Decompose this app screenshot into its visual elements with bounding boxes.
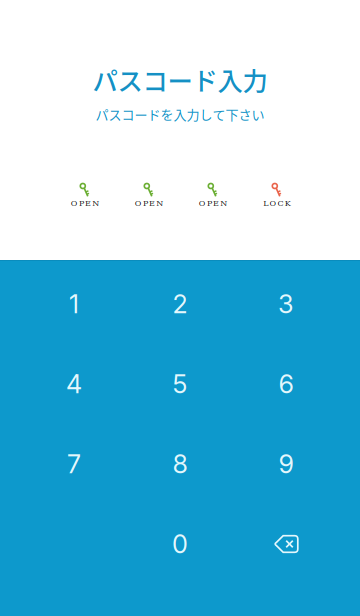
staticText: 5 [172, 369, 187, 399]
button[interactable]: 7 [21, 424, 127, 504]
staticText: 4 [66, 369, 82, 399]
staticText: 3 [278, 289, 294, 319]
staticText: P [79, 199, 84, 208]
staticText: パスコード入力 [92, 61, 267, 98]
staticText: 6 [278, 369, 293, 399]
button[interactable]: 6 [233, 344, 339, 424]
staticText: C [278, 199, 284, 208]
staticText: 0 [172, 529, 188, 559]
button[interactable]: 1 [21, 264, 127, 344]
staticText: N [156, 199, 163, 208]
staticText: E [149, 199, 155, 208]
staticText: O [199, 199, 206, 208]
staticText: 1 [69, 289, 79, 319]
staticText: L [263, 199, 268, 208]
staticText: 7 [67, 449, 81, 479]
staticText: パスコードを入力して下さい [95, 105, 264, 124]
staticText: P [207, 199, 212, 208]
staticText: O [135, 199, 142, 208]
staticText: N [220, 199, 227, 208]
staticText: N [92, 199, 99, 208]
button[interactable]: 8 [127, 424, 233, 504]
button[interactable]: Delete [233, 504, 339, 584]
staticText: K [285, 199, 291, 208]
button[interactable]: 0 [127, 504, 233, 584]
staticText: 2 [172, 289, 187, 319]
staticText: P [143, 199, 148, 208]
staticText: 8 [172, 449, 187, 479]
staticText: O [71, 199, 78, 208]
staticText: E [85, 199, 91, 208]
button[interactable]: 9 [233, 424, 339, 504]
button[interactable]: 4 [21, 344, 127, 424]
staticText: 9 [278, 449, 293, 479]
button[interactable]: 3 [233, 264, 339, 344]
button[interactable]: 2 [127, 264, 233, 344]
staticText: O [269, 199, 276, 208]
button[interactable]: 5 [127, 344, 233, 424]
staticText: E [213, 199, 219, 208]
